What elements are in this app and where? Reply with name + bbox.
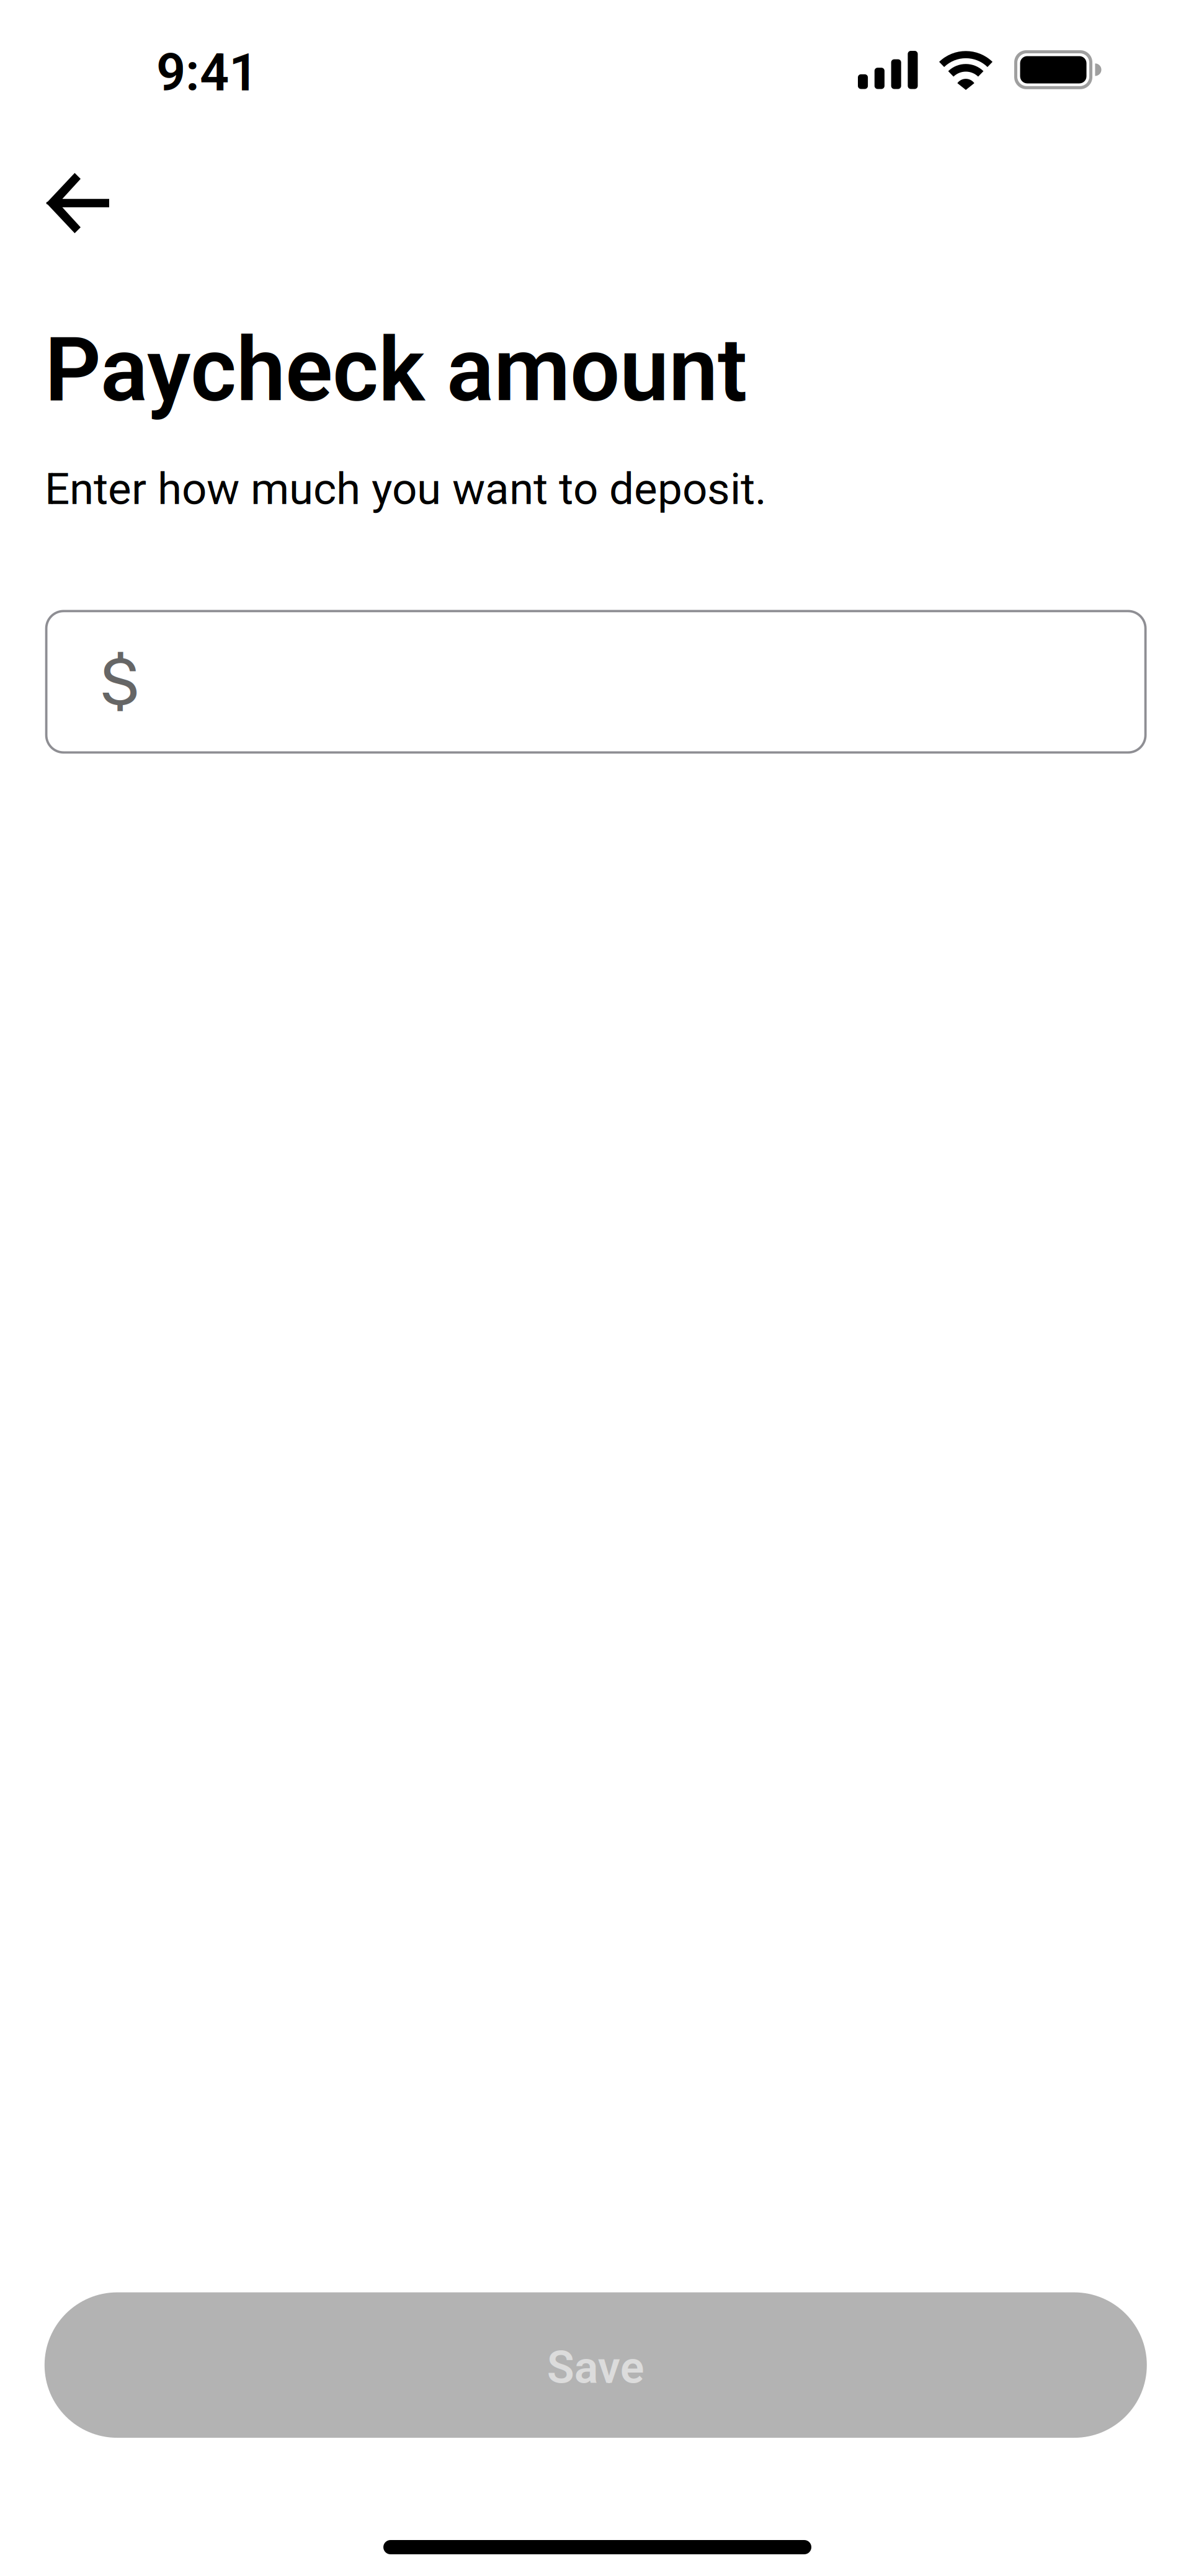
button[interactable]: Save <box>45 2292 1147 2438</box>
staticText: Save <box>547 2341 644 2394</box>
button[interactable]: $ <box>46 611 1145 752</box>
button[interactable]: Back <box>16 143 146 264</box>
staticText: $ <box>99 645 141 719</box>
staticText: Enter how much you want to deposit. <box>45 463 767 515</box>
staticText: 9:41 <box>156 43 258 103</box>
staticText: Paycheck amount <box>45 319 747 422</box>
